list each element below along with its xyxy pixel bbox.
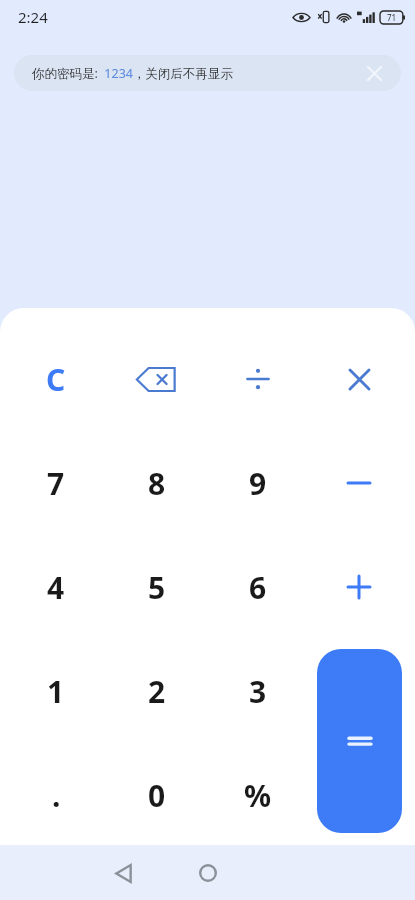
staticText: 71 xyxy=(387,12,397,23)
staticText: 4 xyxy=(47,567,65,608)
button[interactable]: 7 xyxy=(8,447,104,519)
button[interactable]: . xyxy=(8,759,104,831)
button[interactable]: 4 xyxy=(8,551,104,623)
button[interactable]: Home xyxy=(184,849,232,897)
staticText: 3 xyxy=(249,671,267,712)
button[interactable]: 9 xyxy=(210,447,306,519)
staticText: 你的密码是: 1234，关闭后不再显示 xyxy=(32,65,233,82)
staticText: 8 xyxy=(148,463,166,504)
button[interactable] xyxy=(311,551,407,623)
button[interactable] xyxy=(210,343,306,415)
button[interactable]: 5 xyxy=(109,551,205,623)
button[interactable]: C xyxy=(8,343,104,415)
button[interactable] xyxy=(311,447,407,519)
button[interactable]: 你的密码是: 1234，关闭后不再显示 xyxy=(14,55,401,91)
staticText: 6 xyxy=(249,567,267,608)
button[interactable]: % xyxy=(210,759,306,831)
button[interactable] xyxy=(311,343,407,415)
button[interactable]: Backspace xyxy=(109,343,205,415)
staticText: % xyxy=(244,775,272,816)
staticText: 9 xyxy=(249,463,267,504)
button[interactable]: 1 xyxy=(8,655,104,727)
staticText: 2:24 xyxy=(18,7,48,27)
button[interactable]: Close xyxy=(361,60,387,86)
button[interactable]: Back xyxy=(99,849,147,897)
staticText: . xyxy=(52,775,61,816)
button[interactable]: Equals xyxy=(317,649,402,833)
button[interactable]: 2 xyxy=(109,655,205,727)
button[interactable]: 0 xyxy=(109,759,205,831)
button[interactable]: 3 xyxy=(210,655,306,727)
staticText: C xyxy=(46,359,66,400)
staticText: 7 xyxy=(47,463,65,504)
staticText: 1 xyxy=(47,671,65,712)
staticText: 2 xyxy=(148,671,166,712)
staticText: 0 xyxy=(148,775,166,816)
button[interactable]: 6 xyxy=(210,551,306,623)
button[interactable]: 8 xyxy=(109,447,205,519)
staticText: 5 xyxy=(148,567,166,608)
